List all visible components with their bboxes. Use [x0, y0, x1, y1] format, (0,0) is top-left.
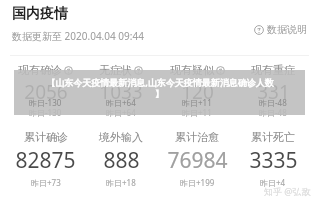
- button[interactable]: 境外输入: [83, 130, 159, 188]
- button[interactable]: 现有重症: [235, 63, 311, 118]
- staticText: 累计确诊: [24, 130, 68, 144]
- staticText: 888: [103, 146, 140, 175]
- staticText: 2056: [24, 79, 68, 105]
- staticText: 1033: [99, 79, 143, 105]
- staticText: 昨日+64: [106, 107, 136, 118]
- staticText: 昨日+199: [180, 177, 215, 188]
- button[interactable]: 累计确诊: [8, 130, 83, 188]
- staticText: 境外输入: [99, 130, 143, 144]
- staticText: 数据更新至 2020.04.04 09:44: [12, 29, 144, 43]
- staticText: 【山东今天疫情最新消息,山东今天疫情最新消息确诊人数: [46, 76, 274, 88]
- staticText: 82875: [15, 146, 76, 175]
- staticText: 331: [257, 79, 290, 105]
- staticText: 昨日-130: [29, 97, 62, 108]
- staticText: 昨日+64: [106, 97, 136, 108]
- staticText: 无症状: [99, 63, 132, 77]
- button[interactable]: 现有确诊: [8, 63, 83, 118]
- button[interactable]: 累计治愈: [159, 130, 235, 188]
- button[interactable]: 累计死亡: [235, 130, 311, 188]
- staticText: 知乎 @弘敌: [264, 185, 311, 197]
- button[interactable]: 无症状: [83, 63, 159, 118]
- staticText: 昨日+11: [182, 107, 212, 118]
- staticText: 昨日+11: [182, 97, 212, 108]
- button[interactable]: 现有疑似: [159, 63, 235, 118]
- staticText: 国内疫情: [12, 5, 68, 23]
- staticText: 现有疑似: [170, 63, 214, 77]
- staticText: 数据说明: [267, 23, 307, 36]
- staticText: 现有重症: [251, 63, 295, 77]
- staticText: 120: [181, 79, 214, 105]
- staticText: 昨日-48: [259, 97, 287, 108]
- staticText: 累计死亡: [251, 130, 295, 144]
- staticText: 昨日-48: [259, 107, 287, 118]
- staticText: 昨日-130: [29, 107, 62, 118]
- staticText: 76984: [167, 146, 228, 175]
- staticText: 现有确诊: [18, 63, 62, 77]
- staticText: 累计治愈: [175, 130, 219, 144]
- staticText: 昨日+4: [260, 177, 286, 188]
- staticText: 昨日+18: [106, 177, 136, 188]
- staticText: 3335: [249, 146, 298, 175]
- button[interactable]: 数据说明: [254, 23, 307, 36]
- staticText: 昨日+73: [31, 177, 61, 188]
- staticText: 】: [155, 88, 164, 99]
